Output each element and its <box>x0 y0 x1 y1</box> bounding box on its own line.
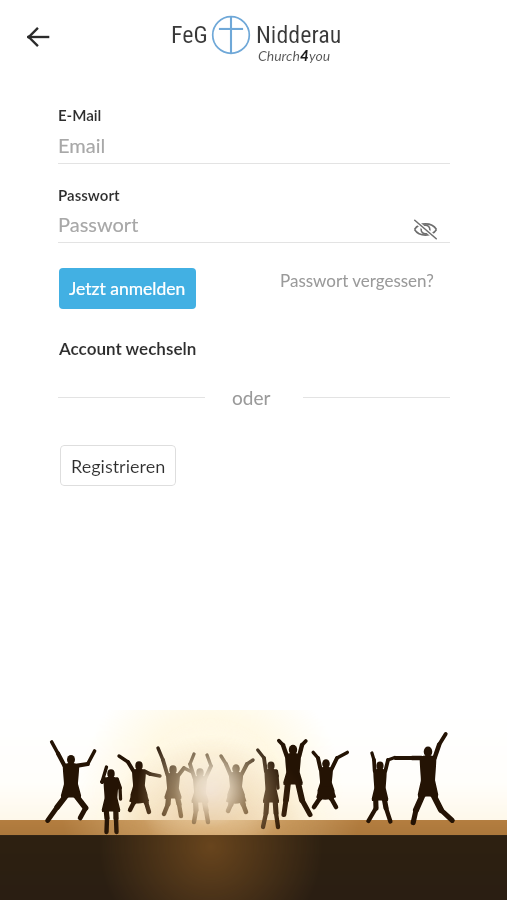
button[interactable]: Passwort vergessen? <box>276 266 438 294</box>
staticText: E-Mail <box>58 106 102 124</box>
button[interactable]: Jetzt anmelden <box>59 268 196 309</box>
staticText: Nidderau <box>256 21 342 49</box>
staticText: you <box>309 47 331 64</box>
staticText: Passwort <box>58 212 139 236</box>
staticText: Registrieren <box>71 455 166 477</box>
staticText: oder <box>232 386 271 409</box>
staticText: Passwort vergessen? <box>280 270 434 290</box>
staticText: Email <box>58 133 106 157</box>
staticText: 4 <box>300 46 309 64</box>
button[interactable]: Show password <box>405 209 445 249</box>
button[interactable]: Account wechseln <box>59 338 197 358</box>
staticText: FeG <box>171 21 208 49</box>
staticText: Account wechseln <box>59 338 197 358</box>
staticText: Jetzt anmelden <box>69 278 186 299</box>
button[interactable]: Registrieren <box>60 445 176 486</box>
button[interactable]: Back <box>16 15 60 59</box>
staticText: Church <box>258 47 300 64</box>
staticText: Passwort <box>58 186 120 204</box>
